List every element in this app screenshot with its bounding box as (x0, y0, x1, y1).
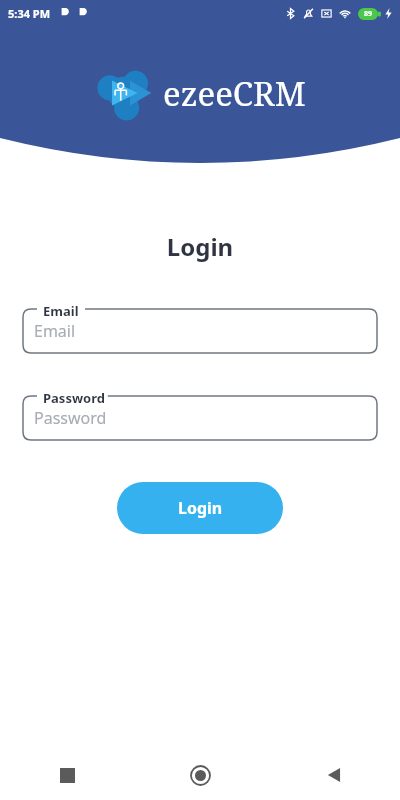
staticText: Password (43, 389, 105, 407)
staticText: 89 (364, 9, 373, 19)
staticText: Email (34, 320, 76, 342)
button[interactable]: Password (23, 396, 377, 440)
button[interactable]: Recent apps (0, 750, 134, 800)
button[interactable]: Email (23, 309, 377, 353)
staticText: Password (34, 407, 107, 429)
button[interactable]: Home (134, 750, 267, 800)
button[interactable]: Back (267, 750, 400, 800)
staticText: Email (43, 302, 79, 320)
button[interactable]: Login (117, 482, 283, 534)
staticText: ezeeCRM (163, 71, 306, 116)
staticText: Login (0, 230, 400, 263)
staticText: 5:34 PM (8, 6, 51, 21)
staticText: Login (178, 497, 223, 519)
